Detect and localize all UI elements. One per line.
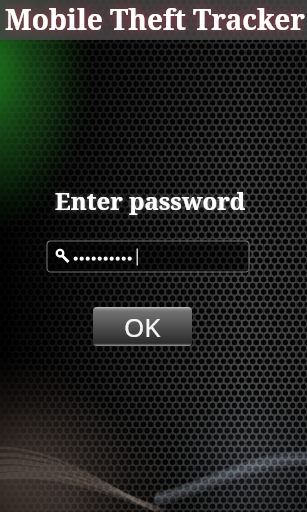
button[interactable]: Password field — [47, 241, 249, 272]
button[interactable]: OK — [93, 307, 192, 346]
staticText: Mobile Theft Tracker — [5, 0, 305, 36]
staticText: OK — [124, 309, 161, 344]
staticText: Enter password — [55, 184, 246, 217]
